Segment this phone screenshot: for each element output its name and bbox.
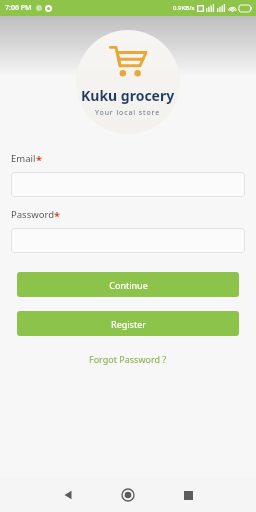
- button[interactable]: Continue: [17, 272, 239, 297]
- staticText: 0.9KB/s: [173, 4, 195, 12]
- button[interactable]: Back: [49, 478, 87, 512]
- staticText: Kuku grocery: [81, 86, 175, 105]
- staticText: *: [36, 152, 42, 167]
- button[interactable]: Forgot Password ?: [11, 353, 245, 365]
- staticText: Continue: [109, 279, 148, 291]
- button[interactable]: [11, 172, 245, 197]
- button[interactable]: Home: [109, 478, 147, 512]
- staticText: Password: [11, 208, 54, 221]
- staticText: Forgot Password ?: [89, 353, 167, 365]
- staticText: Your local store: [95, 108, 161, 118]
- staticText: Email: [11, 152, 36, 165]
- button[interactable]: Recents: [169, 478, 207, 512]
- button[interactable]: [11, 228, 245, 253]
- staticText: 7:06 PM: [5, 3, 32, 13]
- staticText: *: [54, 208, 60, 223]
- staticText: Register: [111, 318, 146, 330]
- button[interactable]: Register: [17, 311, 239, 336]
